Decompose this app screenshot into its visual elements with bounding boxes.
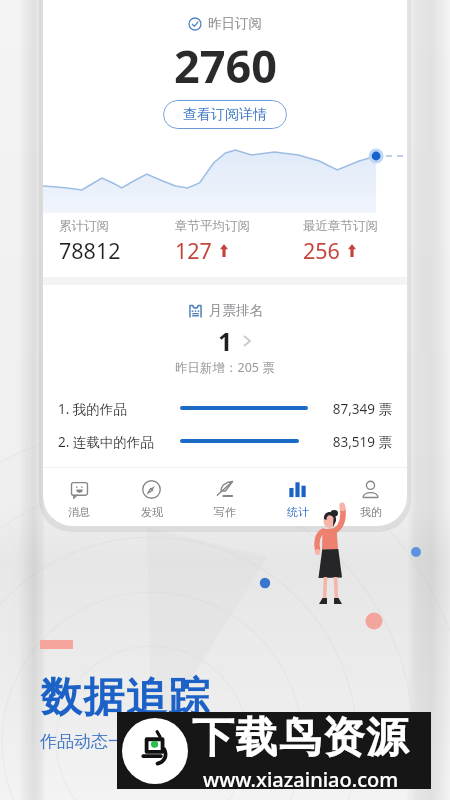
button[interactable]: 查看订阅详情 [163,100,287,129]
staticText: 下载鸟资源 [192,712,410,765]
button[interactable]: 1 [43,323,407,359]
staticText: 昨日新增：205 票 [175,359,275,376]
staticText: 127 [175,236,212,265]
staticText: 作品动态一手掌握 [40,731,176,752]
staticText: 我的 [360,505,382,519]
staticText: 昨日订阅 [208,15,262,32]
staticText: 查看订阅详情 [183,106,267,124]
staticText: 最近章节订阅 [303,218,378,234]
button[interactable]: 2. 连载中的作品 [43,433,407,449]
staticText: 统计 [287,505,309,519]
staticText: www.xiazainiao.com [203,766,399,789]
staticText: 2. 连载中的作品 [58,433,180,449]
button[interactable]: 1. 我的作品 [43,400,407,416]
staticText: 83,519 票 [326,433,392,449]
staticText: 87,349 票 [326,400,392,416]
staticText: 256 [303,236,340,265]
staticText: 章节平均订阅 [175,218,250,234]
button[interactable]: 写作 [188,468,261,526]
staticText: 数据追踪 [40,672,210,724]
staticText: 发现 [141,505,163,519]
staticText: 消息 [68,505,90,519]
staticText: 78812 [59,236,121,265]
button[interactable]: 我的 [334,468,407,526]
staticText: 写作 [214,505,236,519]
staticText: 2760 [174,35,277,96]
button[interactable]: 发现 [115,468,188,526]
staticText: 1 [218,324,233,358]
staticText: 月票排名 [209,302,263,319]
staticText: 累计订阅 [59,218,109,234]
staticText: 1. 我的作品 [58,400,180,416]
button[interactable]: 统计 [261,468,334,526]
button[interactable]: 消息 [43,468,115,526]
